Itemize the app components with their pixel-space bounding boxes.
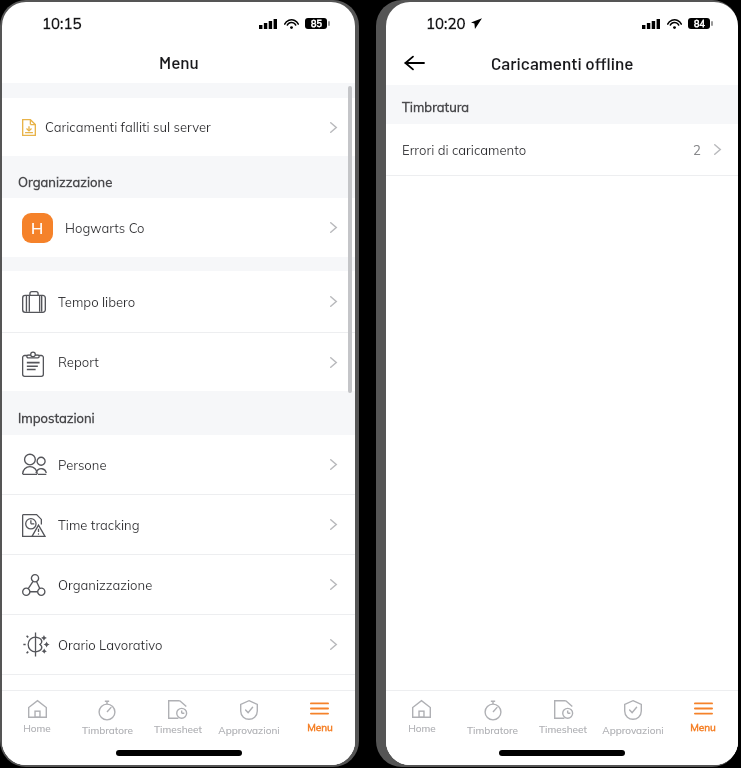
button[interactable]: Timesheet [142,691,213,736]
staticText: Impostazioni [18,410,95,426]
button[interactable]: Menu [284,691,355,734]
button[interactable]: Approvazioni [213,691,284,737]
staticText: Timbratore [467,724,518,737]
button[interactable]: Timbratore [72,691,142,737]
staticText: Organizzazione [58,577,153,593]
button[interactable]: Orario Lavorativo [2,615,355,674]
button[interactable]: Home [2,691,72,735]
staticText: Organizzazione [18,174,113,190]
staticText: 2 [693,142,701,158]
button[interactable]: Time tracking [2,495,355,554]
staticText: H [31,218,44,238]
staticText: Caricamenti falliti sul server [45,119,211,135]
staticText: Hogwarts Co [65,220,145,236]
staticText: Time tracking [58,517,140,533]
button[interactable]: Home [386,691,457,735]
staticText: Persone [58,457,107,473]
staticText: Report [58,354,99,370]
staticText: Orario Lavorativo [58,637,163,653]
staticText: Approvazioni [218,724,280,737]
button[interactable]: Report [2,333,355,391]
button[interactable]: Errori di caricamento [386,124,738,175]
staticText: Tempo libero [58,294,136,310]
staticText: Home [408,722,436,735]
staticText: Home [23,722,51,735]
staticText: Errori di caricamento [402,142,527,158]
staticText: 10:15 [42,14,82,33]
staticText: 10:20 [426,14,466,33]
button[interactable]: H [2,198,355,257]
button[interactable]: Timbratore [457,691,528,737]
button[interactable]: Organizzazione [2,555,355,614]
staticText: Caricamenti offline [491,53,634,73]
button[interactable]: Tempo libero [2,271,355,332]
button[interactable]: Menu [668,691,738,734]
staticText: 85 [311,18,322,29]
button[interactable]: Back [398,47,430,79]
staticText: Timbratura [402,99,470,115]
staticText: Menu [159,52,199,72]
button[interactable]: Caricamenti falliti sul server [2,98,355,156]
staticText: Timesheet [154,723,202,736]
staticText: Menu [307,721,333,734]
button[interactable]: Persone [2,435,355,494]
staticText: Timesheet [539,723,587,736]
staticText: Approvazioni [602,724,664,737]
button[interactable]: Timesheet [528,691,598,736]
staticText: Menu [690,721,716,734]
staticText: Timbratore [82,724,133,737]
button[interactable]: Approvazioni [598,691,668,737]
staticText: 84 [694,18,705,29]
